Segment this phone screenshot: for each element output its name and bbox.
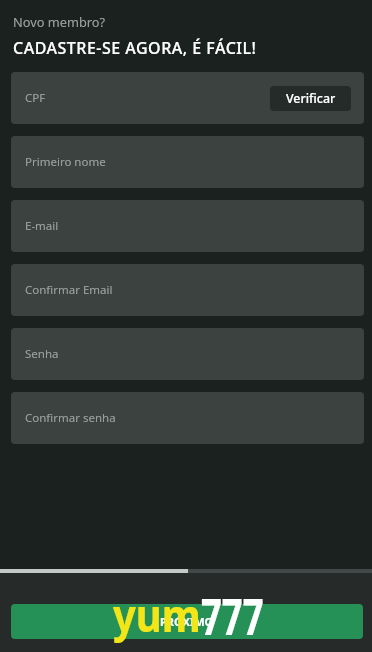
- staticText: E-mail: [25, 218, 59, 234]
- staticText: yum: [113, 584, 201, 644]
- button[interactable]: Primeiro nome: [11, 136, 364, 188]
- staticText: CPF: [25, 90, 46, 106]
- staticText: CADASTRE-SE AGORA, É FÁCIL!: [13, 37, 257, 59]
- staticText: Primeiro nome: [25, 154, 106, 170]
- button[interactable]: Confirmar senha: [11, 392, 364, 444]
- button[interactable]: Senha: [11, 328, 364, 380]
- button[interactable]: E-mail: [11, 200, 364, 252]
- button[interactable]: PRÓXIMO: [11, 604, 363, 639]
- staticText: Novo membro?: [13, 13, 106, 30]
- staticText: PRÓXIMO: [160, 614, 214, 629]
- staticText: Senha: [25, 346, 59, 362]
- button[interactable]: Verificar: [270, 86, 351, 111]
- staticText: 777: [201, 581, 264, 648]
- staticText: Verificar: [286, 90, 336, 107]
- button[interactable]: CPF: [11, 72, 364, 124]
- staticText: Confirmar Email: [25, 282, 113, 298]
- button[interactable]: Confirmar Email: [11, 264, 364, 316]
- staticText: Confirmar senha: [25, 410, 116, 426]
